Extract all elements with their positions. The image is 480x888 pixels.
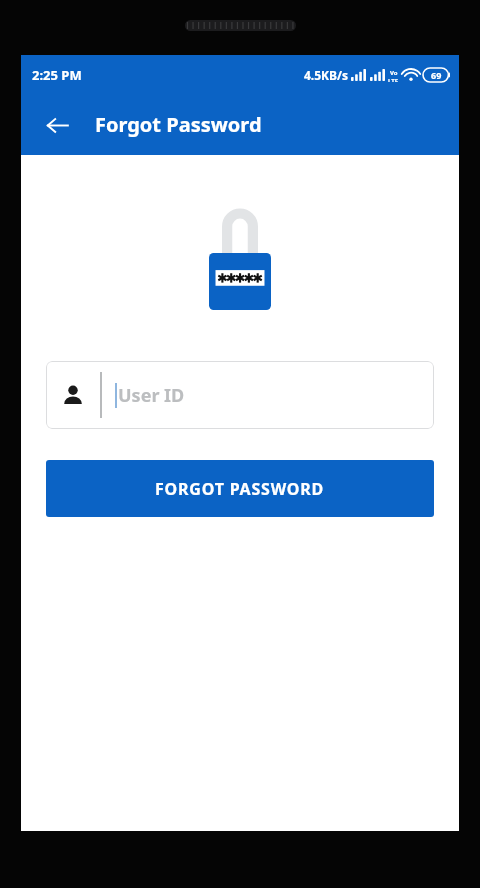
button[interactable]: Back [37, 105, 77, 145]
staticText: 69 [431, 69, 442, 81]
staticText: User ID [118, 383, 185, 408]
button[interactable]: FORGOT PASSWORD [46, 460, 434, 517]
staticText: Vo [390, 69, 398, 77]
staticText: 2:25 PM [32, 66, 82, 84]
button[interactable]: User ID [46, 361, 434, 429]
staticText: 4.5KB/s [304, 67, 349, 83]
staticText: LTE [388, 77, 399, 82]
staticText: Forgot Password [95, 111, 262, 138]
staticText: FORGOT PASSWORD [155, 478, 325, 500]
